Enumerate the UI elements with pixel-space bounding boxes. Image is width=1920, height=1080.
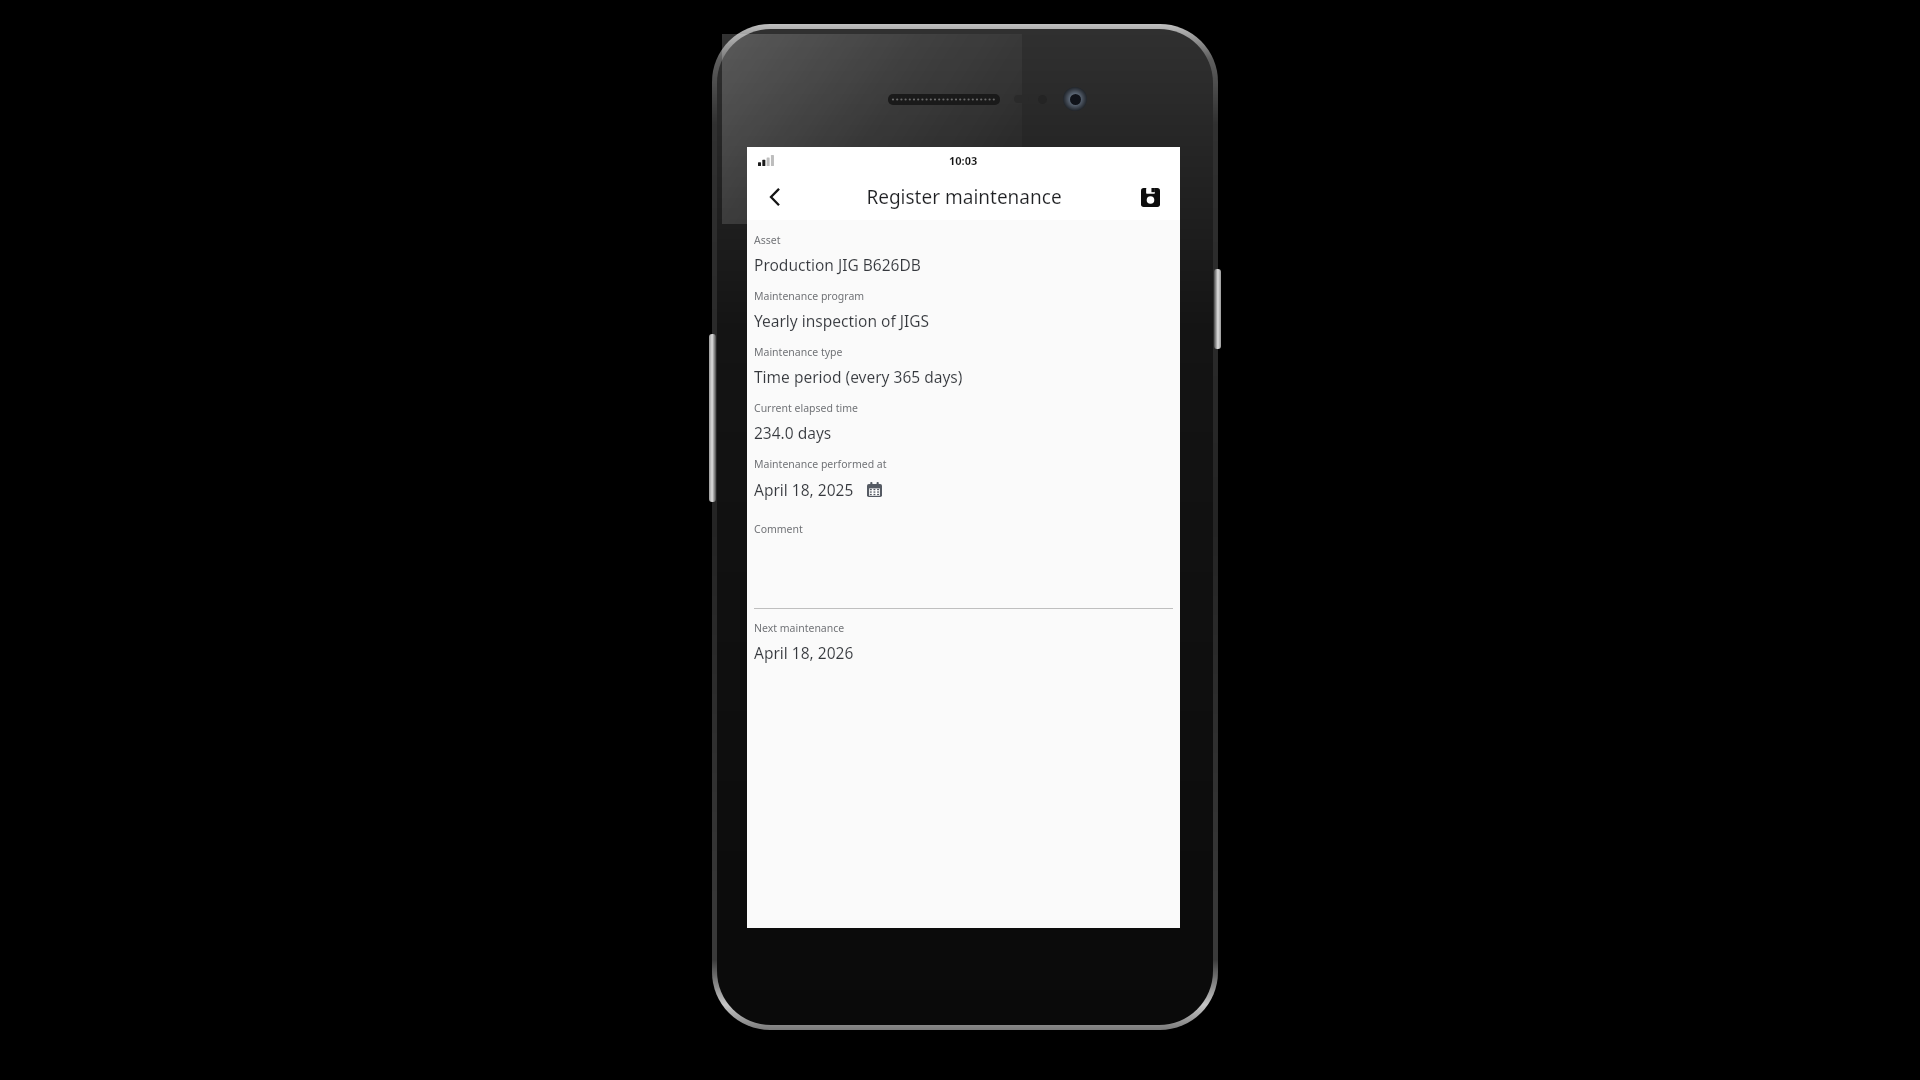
staticText: Maintenance program [754, 289, 865, 303]
other: Pick date [867, 482, 882, 497]
staticText: Next maintenance [754, 621, 845, 635]
staticText: 234.0 days [754, 422, 832, 443]
staticText: Yearly inspection of JIGS [754, 310, 930, 331]
staticText: April 18, 2025 [754, 479, 854, 500]
staticText: Current elapsed time [754, 401, 858, 415]
button[interactable]: Save [1130, 177, 1170, 217]
staticText: Time period (every 365 days) [754, 366, 963, 387]
button[interactable]: Back [755, 177, 795, 217]
staticText: 10:03 [949, 153, 978, 168]
staticText: Production JIG B626DB [754, 254, 921, 275]
staticText: Register maintenance [866, 184, 1062, 210]
staticText: Comment [754, 522, 803, 536]
staticText: Maintenance type [754, 345, 843, 359]
staticText: Asset [754, 233, 781, 247]
staticText: Maintenance performed at [754, 457, 887, 471]
staticText: April 18, 2026 [754, 642, 854, 663]
button[interactable]: April 18, 2025 [754, 471, 1173, 506]
